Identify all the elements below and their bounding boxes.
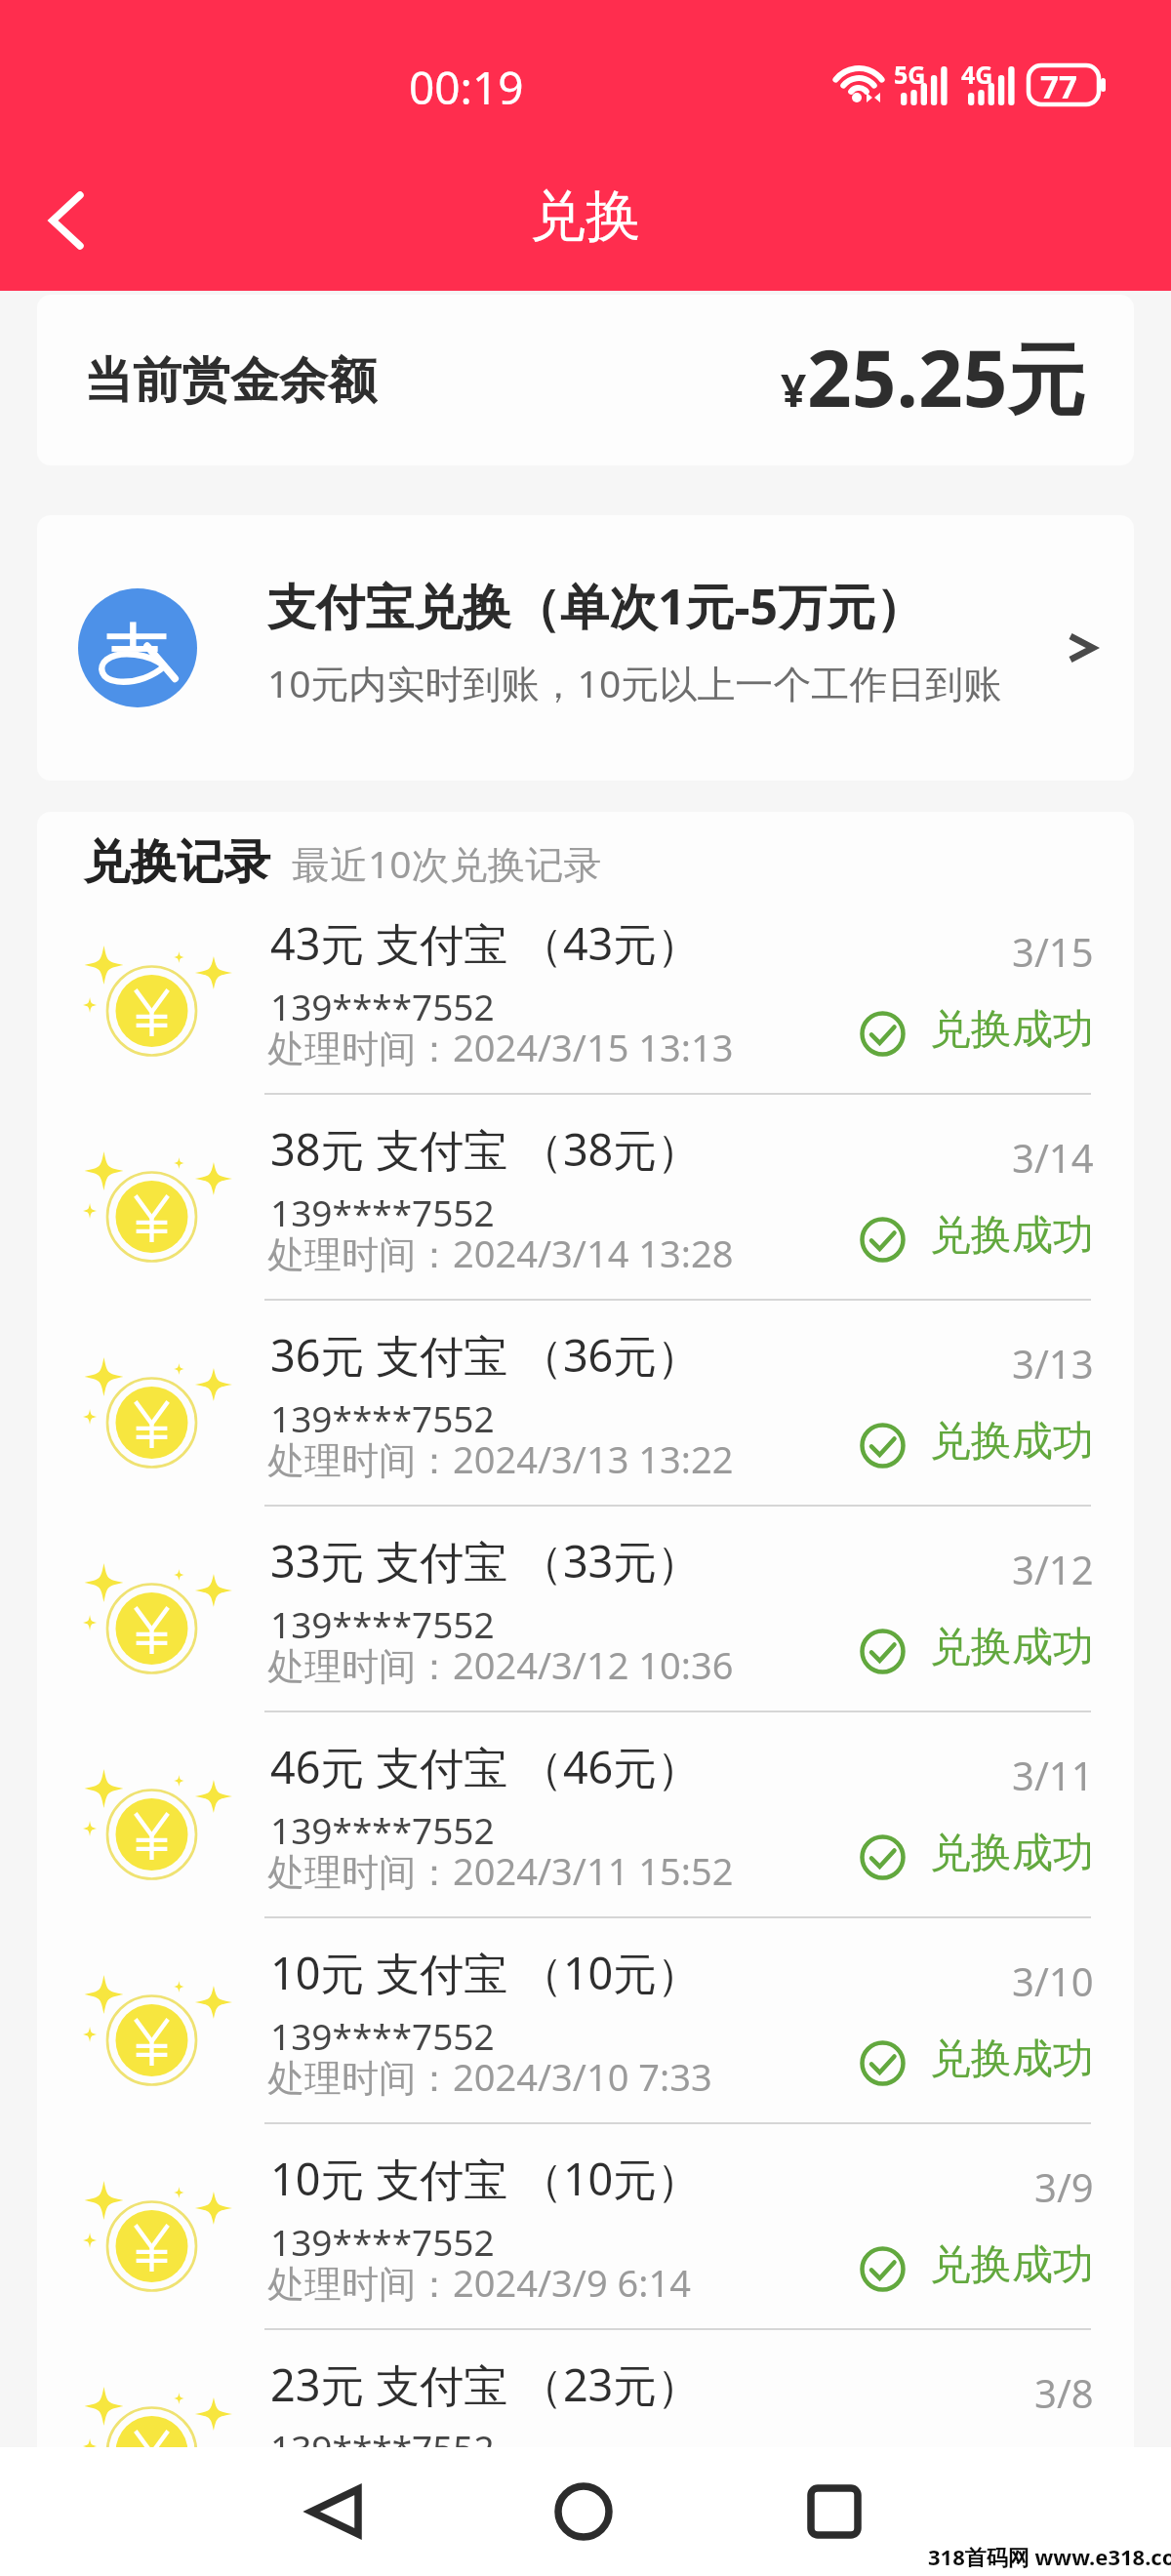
staticText: 处理时间：2024/3/12 10:36 — [267, 1639, 734, 1690]
staticText: 10元 支付宝 （10元） — [270, 2149, 702, 2208]
staticText: 处理时间：2024/3/14 13:28 — [267, 1228, 734, 1278]
staticText: 兑换成功 — [930, 2033, 1094, 2085]
staticText: 10元 支付宝 （10元） — [270, 1943, 702, 2002]
staticText: 处理时间：2024/3/9 6:14 — [267, 2257, 691, 2308]
staticText: 25.25元 — [807, 323, 1086, 429]
staticText: 兑换成功 — [930, 1210, 1094, 1262]
staticText: 兑换记录 — [83, 833, 270, 892]
staticText: 处理时间：2024/3/15 13:13 — [267, 1022, 734, 1072]
staticText: 处理时间：2024/3/10 7:33 — [267, 2051, 712, 2102]
staticText: 10元内实时到账，10元以上一个工作日到账 — [267, 657, 1002, 708]
staticText: 3/15 — [1012, 925, 1094, 978]
staticText: 3/13 — [1012, 1337, 1094, 1389]
button[interactable]: 23元 支付宝 （23元） — [37, 2330, 1134, 2536]
staticText: 77 — [1040, 64, 1077, 108]
staticText: 4G — [961, 58, 993, 91]
button[interactable]: 支付宝兑换（单次1元-5万元） — [37, 515, 1134, 781]
button[interactable]: Open Alipay exchange — [1040, 607, 1122, 689]
staticText: 00:19 — [409, 57, 524, 118]
staticText: 兑换成功 — [930, 2239, 1094, 2291]
staticText: 兑换成功 — [930, 1004, 1094, 1056]
staticText: 当前赏金余额 — [84, 350, 377, 412]
button[interactable]: 33元 支付宝 （33元） — [37, 1507, 1134, 1712]
button[interactable]: 当前赏金余额 — [37, 295, 1134, 465]
button[interactable]: Home — [535, 2463, 632, 2560]
staticText: 最近10次兑换记录 — [292, 837, 602, 889]
staticText: 43元 支付宝 （43元） — [270, 913, 702, 973]
staticText: 兑换 — [530, 181, 641, 252]
staticText: 处理时间：2024/3/8 5:44 — [267, 2463, 691, 2514]
staticText: 3/8 — [1034, 2366, 1094, 2419]
button[interactable]: 10元 支付宝 （10元） — [37, 1918, 1134, 2124]
staticText: 支付宝兑换（单次1元-5万元） — [267, 573, 925, 639]
staticText: 兑换成功 — [930, 1828, 1094, 1879]
staticText: 处理时间：2024/3/11 15:52 — [267, 1845, 734, 1896]
staticText: 3/9 — [1034, 2160, 1094, 2213]
staticText: 139****7552 — [270, 1393, 495, 1442]
staticText: 处理时间：2024/3/13 13:22 — [267, 1433, 734, 1484]
staticText: 5G — [894, 58, 926, 91]
button[interactable]: 43元 支付宝 （43元） — [37, 889, 1134, 1095]
staticText: 3/14 — [1012, 1131, 1094, 1184]
staticText: 33元 支付宝 （33元） — [270, 1531, 702, 1590]
button[interactable]: Back — [286, 2463, 384, 2560]
button[interactable]: 46元 支付宝 （46元） — [37, 1712, 1134, 1918]
staticText: ¥ — [781, 359, 807, 421]
staticText: 139****7552 — [270, 982, 495, 1030]
staticText: 23元 支付宝 （23元） — [270, 2355, 702, 2414]
staticText: 36元 支付宝 （36元） — [270, 1325, 702, 1385]
staticText: 3/11 — [1012, 1749, 1094, 1801]
staticText: 139****7552 — [270, 1599, 495, 1648]
button[interactable]: 38元 支付宝 （38元） — [37, 1095, 1134, 1301]
staticText: 38元 支付宝 （38元） — [270, 1119, 702, 1179]
staticText: 兑换成功 — [930, 1622, 1094, 1673]
button[interactable]: Recent apps — [786, 2463, 883, 2560]
staticText: 3/12 — [1012, 1543, 1094, 1595]
button[interactable]: 36元 支付宝 （36元） — [37, 1301, 1134, 1507]
staticText: 兑换成功 — [930, 1416, 1094, 1468]
button[interactable]: Back — [10, 164, 123, 277]
staticText: 139****7552 — [270, 2423, 495, 2472]
staticText: 3/10 — [1012, 1954, 1094, 2007]
staticText: 139****7552 — [270, 1187, 495, 1236]
staticText: 139****7552 — [270, 2011, 495, 2060]
staticText: 139****7552 — [270, 1805, 495, 1854]
staticText: 318首码网 www.e318.com — [928, 2542, 1171, 2571]
staticText: 139****7552 — [270, 2217, 495, 2266]
staticText: 46元 支付宝 （46元） — [270, 1737, 702, 1796]
button[interactable]: 10元 支付宝 （10元） — [37, 2124, 1134, 2330]
